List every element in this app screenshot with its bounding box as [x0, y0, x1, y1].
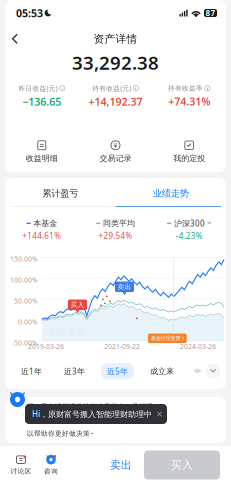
staticText: -4.23% — [176, 231, 203, 241]
staticText: 收益明细 — [26, 153, 58, 163]
staticText: 近1年 — [21, 366, 42, 377]
button[interactable]: 咨询 — [36, 451, 66, 479]
button[interactable]: 展开 — [205, 363, 221, 379]
staticText: ¥ — [113, 141, 117, 150]
staticText: 100.00% — [10, 275, 38, 284]
staticText: 2021-09-22 — [104, 342, 140, 351]
staticText: 05:53 — [16, 6, 43, 20]
staticText: 同类平均 — [103, 218, 135, 228]
staticText: 嗯，看你近期经常关注这只基金，是想调 — [27, 402, 153, 411]
button[interactable]: 我的定投 — [152, 140, 226, 164]
button[interactable]: 对比 — [190, 365, 205, 377]
staticText: 以帮助你更好做决策~ — [27, 429, 94, 438]
button[interactable]: 讨论区 — [6, 451, 36, 479]
staticText: +14,192.37 — [88, 95, 142, 109]
staticText: 成立来 — [150, 366, 174, 376]
button[interactable]: 收益明细 — [5, 140, 79, 164]
staticText: 咨询 — [44, 467, 58, 475]
staticText: 0.00% — [18, 317, 38, 326]
staticText: +74.31% — [168, 94, 210, 108]
staticText: -50.00% — [12, 338, 38, 347]
staticText: 昨日收益(元) — [19, 84, 58, 93]
staticText: 买入 — [70, 301, 84, 309]
staticText: 本基金 — [33, 218, 57, 228]
staticText: 沪深300 — [174, 218, 205, 229]
staticText: 业绩走势 — [153, 188, 189, 199]
staticText: 交易记录 — [99, 153, 131, 163]
staticText: 持有收益(元) — [92, 84, 131, 93]
button[interactable]: 近3年 — [58, 363, 91, 380]
staticText: 87 — [205, 8, 215, 18]
button[interactable]: 买入 — [144, 450, 220, 479]
button[interactable]: 近5年 — [101, 363, 134, 380]
staticText: 资产详情 — [93, 32, 137, 45]
staticText: +29.54% — [98, 230, 132, 241]
staticText: 卖出 — [110, 458, 132, 471]
staticText: 持有收益率 — [168, 84, 203, 92]
staticText: 近3年 — [64, 366, 85, 377]
button[interactable]: 近1年 — [15, 363, 48, 380]
staticText: 整分析，或许可 — [27, 416, 76, 424]
staticText: +144.61% — [22, 230, 61, 241]
staticText: 我的定投 — [173, 153, 205, 163]
button[interactable]: 业绩走势 — [115, 185, 226, 206]
staticText: 讨论区 — [10, 467, 31, 475]
staticText: 卖出 — [117, 283, 131, 291]
button[interactable]: 返回 — [5, 28, 24, 49]
button[interactable]: 成立来 — [144, 363, 180, 379]
button[interactable]: 基金经理变更 — [148, 333, 187, 343]
staticText: 累计盈亏 — [42, 188, 78, 199]
staticText: 近5年 — [107, 366, 128, 377]
staticText: 买入 — [171, 458, 193, 471]
staticText: 33,292.38 — [72, 50, 159, 75]
button[interactable]: 累计盈亏 — [5, 185, 115, 206]
staticText: 2024-03-26 — [180, 342, 216, 351]
button[interactable]: 卖出 — [98, 451, 144, 479]
button[interactable]: 关闭 — [152, 408, 162, 419]
staticText: 50.00% — [14, 296, 38, 305]
staticText: 基金经理变更 — [150, 335, 180, 342]
staticText: 150.00% — [10, 254, 38, 263]
staticText: Hi，原财富号搬入智能理财助理中 — [32, 409, 152, 419]
staticText: 2019-03-26 — [28, 342, 64, 351]
button[interactable]: ¥ — [79, 140, 152, 164]
staticText: −136.65 — [22, 95, 61, 109]
